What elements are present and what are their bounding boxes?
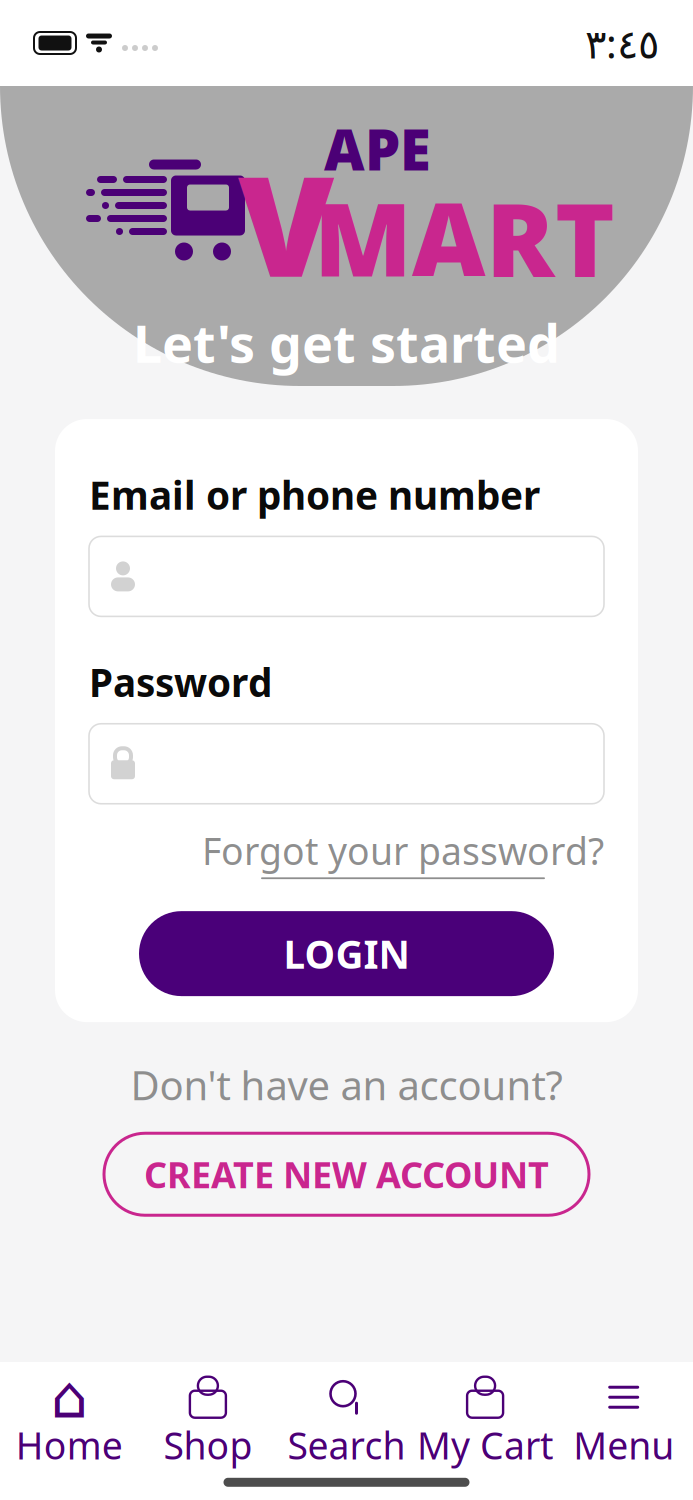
- staticText: ٣:٤٥: [585, 16, 659, 69]
- staticText: Search: [287, 1420, 405, 1470]
- staticText: Menu: [573, 1420, 674, 1470]
- button[interactable]: LOGIN: [139, 911, 554, 996]
- button[interactable]: Forgot your password?: [202, 826, 604, 879]
- staticText: APE: [324, 111, 431, 186]
- button[interactable]: ⌂: [0, 1377, 139, 1470]
- staticText: Don't have an account?: [130, 1058, 562, 1111]
- staticText: Password: [89, 656, 272, 708]
- button[interactable]: My Cart: [416, 1377, 554, 1470]
- staticText: LOGIN: [283, 928, 409, 979]
- staticText: Email or phone number: [89, 469, 540, 520]
- staticText: ⌂: [51, 1364, 88, 1430]
- staticText: Forgot your password?: [202, 826, 604, 875]
- button[interactable]: CREATE NEW ACCOUNT: [104, 1133, 589, 1215]
- staticText: V: [238, 131, 334, 315]
- button[interactable]: Search: [277, 1377, 416, 1470]
- staticText: Home: [16, 1420, 123, 1470]
- button[interactable]: Shop: [139, 1377, 277, 1470]
- staticText: Let's get started: [133, 308, 560, 377]
- staticText: CREATE NEW ACCOUNT: [144, 1150, 549, 1198]
- button[interactable]: Menu: [554, 1377, 693, 1470]
- staticText: My Cart: [417, 1420, 553, 1470]
- staticText: Shop: [163, 1420, 252, 1470]
- staticText: MART: [314, 170, 615, 304]
